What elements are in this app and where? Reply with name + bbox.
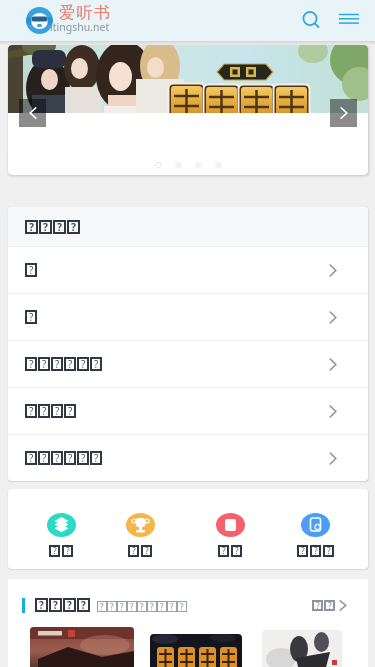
staticText: ? xyxy=(68,357,73,371)
staticText: ? xyxy=(53,545,57,557)
staticText: ? xyxy=(29,451,34,465)
button[interactable]: ? xyxy=(31,489,91,569)
staticText: ? xyxy=(57,220,63,234)
button[interactable]: ? xyxy=(8,341,368,387)
staticText: ? xyxy=(43,220,49,234)
staticText: itingshu.net xyxy=(50,20,110,34)
staticText: ? xyxy=(42,357,47,371)
button[interactable]: ? xyxy=(8,247,368,293)
staticText: ? xyxy=(120,601,124,612)
staticText: ? xyxy=(316,600,320,611)
staticText: ? xyxy=(222,545,226,557)
staticText: ? xyxy=(39,598,44,612)
staticText: ? xyxy=(314,545,318,557)
button[interactable] xyxy=(330,99,357,127)
staticText: ? xyxy=(68,404,73,418)
staticText: ? xyxy=(29,357,34,371)
staticText: ? xyxy=(110,601,114,612)
button[interactable]: ? xyxy=(8,294,368,340)
button[interactable]: ? xyxy=(285,489,345,569)
staticText: ? xyxy=(328,600,332,611)
staticText: ? xyxy=(327,545,331,557)
button[interactable] xyxy=(30,627,134,667)
staticText: ? xyxy=(160,601,164,612)
button[interactable]: ? xyxy=(200,489,260,569)
button[interactable] xyxy=(19,99,46,127)
staticText: ? xyxy=(145,545,149,557)
staticText: ? xyxy=(130,601,134,612)
staticText: ? xyxy=(67,598,72,612)
staticText: ? xyxy=(42,451,47,465)
staticText: ? xyxy=(53,598,58,612)
staticText: ? xyxy=(140,601,144,612)
staticText: ? xyxy=(29,263,34,277)
button[interactable] xyxy=(150,634,242,667)
staticText: ? xyxy=(81,451,86,465)
staticText: ? xyxy=(81,357,86,371)
staticText: ? xyxy=(81,598,86,612)
button[interactable] xyxy=(262,630,342,667)
staticText: ? xyxy=(29,404,34,418)
button[interactable]: ? xyxy=(8,435,368,481)
staticText: ? xyxy=(170,601,174,612)
staticText: ? xyxy=(55,451,60,465)
staticText: ? xyxy=(180,601,184,612)
button[interactable] xyxy=(336,8,362,30)
button[interactable] xyxy=(296,5,326,35)
staticText: ? xyxy=(66,545,70,557)
staticText: ? xyxy=(150,601,154,612)
staticText: ? xyxy=(301,545,305,557)
button[interactable]: ? xyxy=(312,600,347,611)
staticText: ? xyxy=(29,310,34,324)
staticText: ? xyxy=(55,357,60,371)
staticText: ? xyxy=(94,451,99,465)
button[interactable]: ? xyxy=(8,388,368,434)
staticText: ? xyxy=(55,404,60,418)
staticText: ? xyxy=(68,451,73,465)
staticText: ? xyxy=(42,404,47,418)
staticText: ? xyxy=(71,220,77,234)
staticText: 爱听书 xyxy=(59,3,112,23)
staticText: ? xyxy=(29,220,35,234)
button[interactable]: ? xyxy=(110,489,170,569)
staticText: ? xyxy=(235,545,239,557)
staticText: ? xyxy=(132,545,136,557)
staticText: ? xyxy=(100,601,104,612)
button[interactable] xyxy=(8,45,368,175)
staticText: ? xyxy=(94,357,99,371)
